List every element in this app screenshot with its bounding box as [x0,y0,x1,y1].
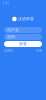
staticText: 注册 [36,49,42,52]
button[interactable]: 登录 [4,41,42,47]
button[interactable]: 注册 [36,49,42,52]
staticText: 忘密码 [4,49,13,52]
button[interactable]: 忘密码 [4,49,13,52]
staticText: 密码 [7,34,15,39]
staticText: 用户名 [7,27,19,32]
staticText: 汉语学堂 [18,16,34,21]
staticText: 9:41 [2,2,9,5]
staticText: 登录 [19,41,27,46]
